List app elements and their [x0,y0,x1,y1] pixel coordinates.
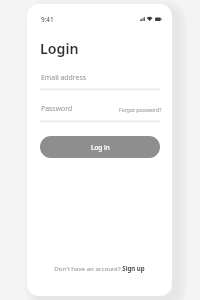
staticText: Password [41,104,73,113]
button[interactable]: Email address [40,70,160,87]
staticText: Login [40,39,79,58]
button[interactable]: Password [40,101,160,118]
button[interactable]: Log in [40,136,160,158]
other: Signal, wifi and battery status [140,17,162,21]
button[interactable]: Forgot password? [119,107,162,114]
staticText: Log in [91,143,110,152]
staticText: Don't have an account? Sign up [54,264,145,272]
staticText: 9:41 [41,15,54,24]
staticText: Email address [41,73,87,82]
staticText: Forgot password? [119,107,162,114]
button[interactable]: Don't have an account? Sign up [54,264,145,272]
